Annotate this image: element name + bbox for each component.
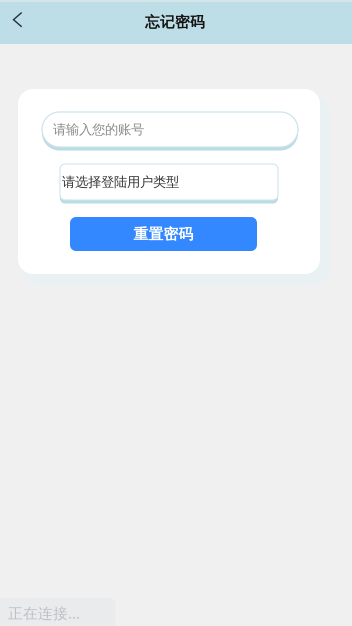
staticText: 请选择登陆用户类型 [62,174,179,190]
staticText: 请输入您的账号 [53,121,144,138]
staticText: 正在连接... [8,603,80,623]
staticText: 忘记密码 [145,13,205,31]
staticText: 重置密码 [133,225,193,243]
button[interactable]: Back [0,0,44,38]
button[interactable]: 重置密码 [70,217,257,251]
